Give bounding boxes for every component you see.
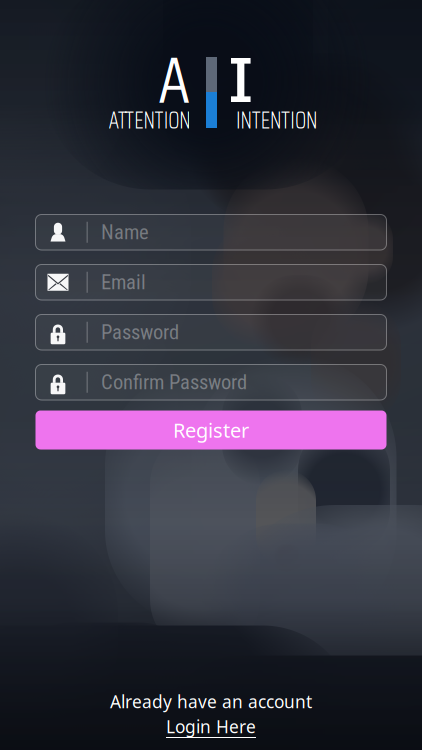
- button[interactable]: Register: [35, 410, 386, 449]
- button[interactable]: Login Here: [166, 715, 256, 738]
- button[interactable]: Name: [35, 214, 386, 250]
- staticText: Register: [173, 417, 249, 443]
- staticText: Password: [101, 320, 179, 344]
- staticText: INTENTION: [236, 100, 324, 137]
- button[interactable]: Password: [35, 314, 386, 350]
- staticText: Email: [101, 270, 146, 294]
- staticText: Login Here: [166, 715, 256, 738]
- staticText: ATTENTION: [108, 100, 197, 137]
- staticText: Confirm Password: [101, 370, 247, 394]
- staticText: Name: [101, 220, 149, 244]
- staticText: A: [158, 29, 190, 131]
- button[interactable]: Confirm Password: [35, 364, 386, 400]
- staticText: Already have an account: [110, 690, 312, 713]
- button[interactable]: Email: [35, 264, 386, 300]
